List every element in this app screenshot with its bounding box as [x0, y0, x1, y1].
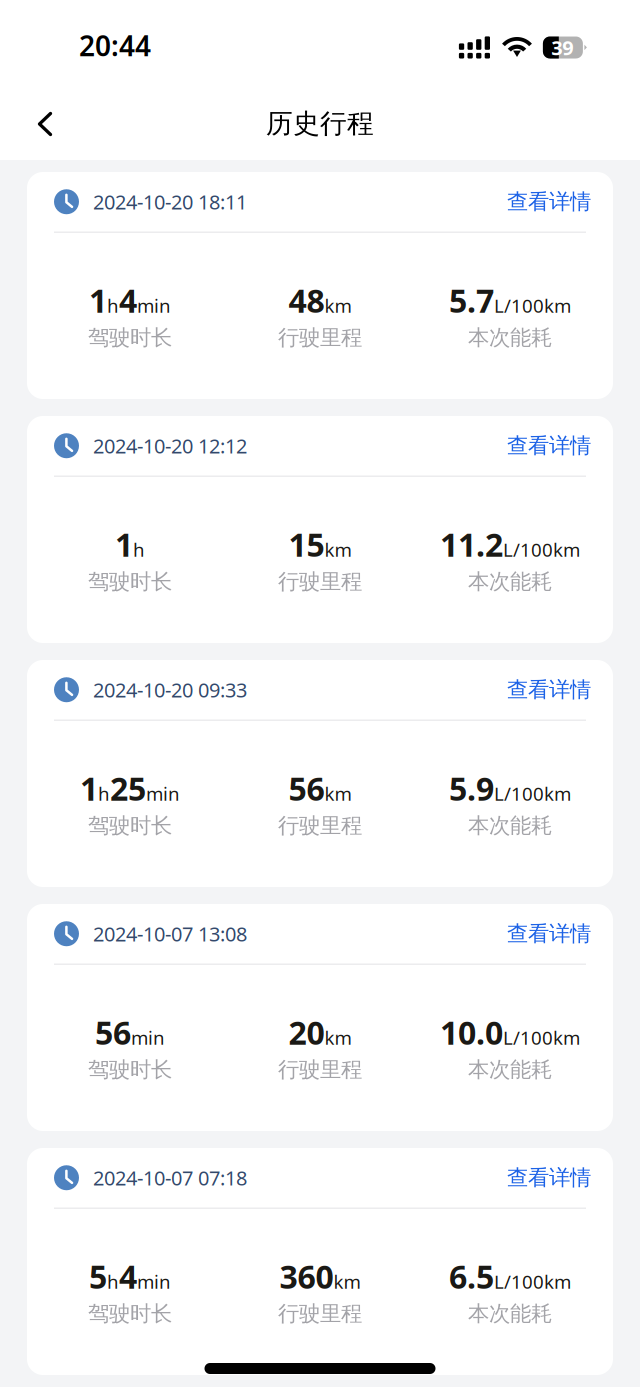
- staticText: 查看详情: [507, 189, 591, 215]
- staticText: 查看详情: [507, 677, 591, 703]
- staticText: 20km: [288, 1011, 351, 1053]
- staticText: 39: [551, 34, 573, 61]
- staticText: 5.9L/100km: [449, 767, 571, 809]
- staticText: 驾驶时长: [88, 568, 172, 595]
- staticText: 查看详情: [507, 1165, 591, 1191]
- staticText: 2024-10-20 09:33: [93, 676, 247, 703]
- staticText: 驾驶时长: [88, 324, 172, 351]
- staticText: 行驶里程: [278, 1300, 362, 1327]
- staticText: 48km: [288, 279, 351, 321]
- button[interactable]: 查看详情: [495, 183, 591, 221]
- staticText: 行驶里程: [278, 324, 362, 351]
- button[interactable]: Back: [19, 98, 71, 152]
- staticText: 56min: [95, 1011, 165, 1053]
- staticText: 本次能耗: [468, 1056, 552, 1083]
- staticText: 本次能耗: [468, 1300, 552, 1327]
- staticText: 查看详情: [507, 921, 591, 947]
- button[interactable]: 查看详情: [495, 671, 591, 709]
- staticText: 5.7L/100km: [449, 279, 571, 321]
- staticText: 查看详情: [507, 433, 591, 459]
- staticText: 本次能耗: [468, 812, 552, 839]
- staticText: 2024-10-07 07:18: [93, 1164, 247, 1191]
- staticText: 5h4min: [89, 1255, 171, 1297]
- staticText: 1h4min: [89, 279, 171, 321]
- staticText: 2024-10-07 13:08: [93, 920, 247, 947]
- staticText: 行驶里程: [278, 812, 362, 839]
- staticText: 驾驶时长: [88, 1056, 172, 1083]
- staticText: 56km: [288, 767, 351, 809]
- staticText: 1h: [115, 523, 145, 565]
- staticText: 15km: [288, 523, 351, 565]
- button[interactable]: 查看详情: [495, 1159, 591, 1197]
- staticText: 行驶里程: [278, 1056, 362, 1083]
- staticText: 360km: [279, 1255, 360, 1297]
- staticText: 驾驶时长: [88, 812, 172, 839]
- staticText: 20:44: [79, 27, 151, 64]
- staticText: 本次能耗: [468, 568, 552, 595]
- staticText: 10.0L/100km: [440, 1011, 580, 1053]
- staticText: 2024-10-20 12:12: [93, 432, 247, 459]
- staticText: 本次能耗: [468, 324, 552, 351]
- staticText: 6.5L/100km: [449, 1255, 571, 1297]
- button[interactable]: 查看详情: [495, 427, 591, 465]
- staticText: 2024-10-20 18:11: [93, 188, 247, 215]
- staticText: 行驶里程: [278, 568, 362, 595]
- button[interactable]: 查看详情: [495, 915, 591, 953]
- staticText: 驾驶时长: [88, 1300, 172, 1327]
- staticText: 历史行程: [266, 107, 374, 140]
- staticText: 1h25min: [80, 767, 180, 809]
- staticText: 11.2L/100km: [440, 523, 580, 565]
